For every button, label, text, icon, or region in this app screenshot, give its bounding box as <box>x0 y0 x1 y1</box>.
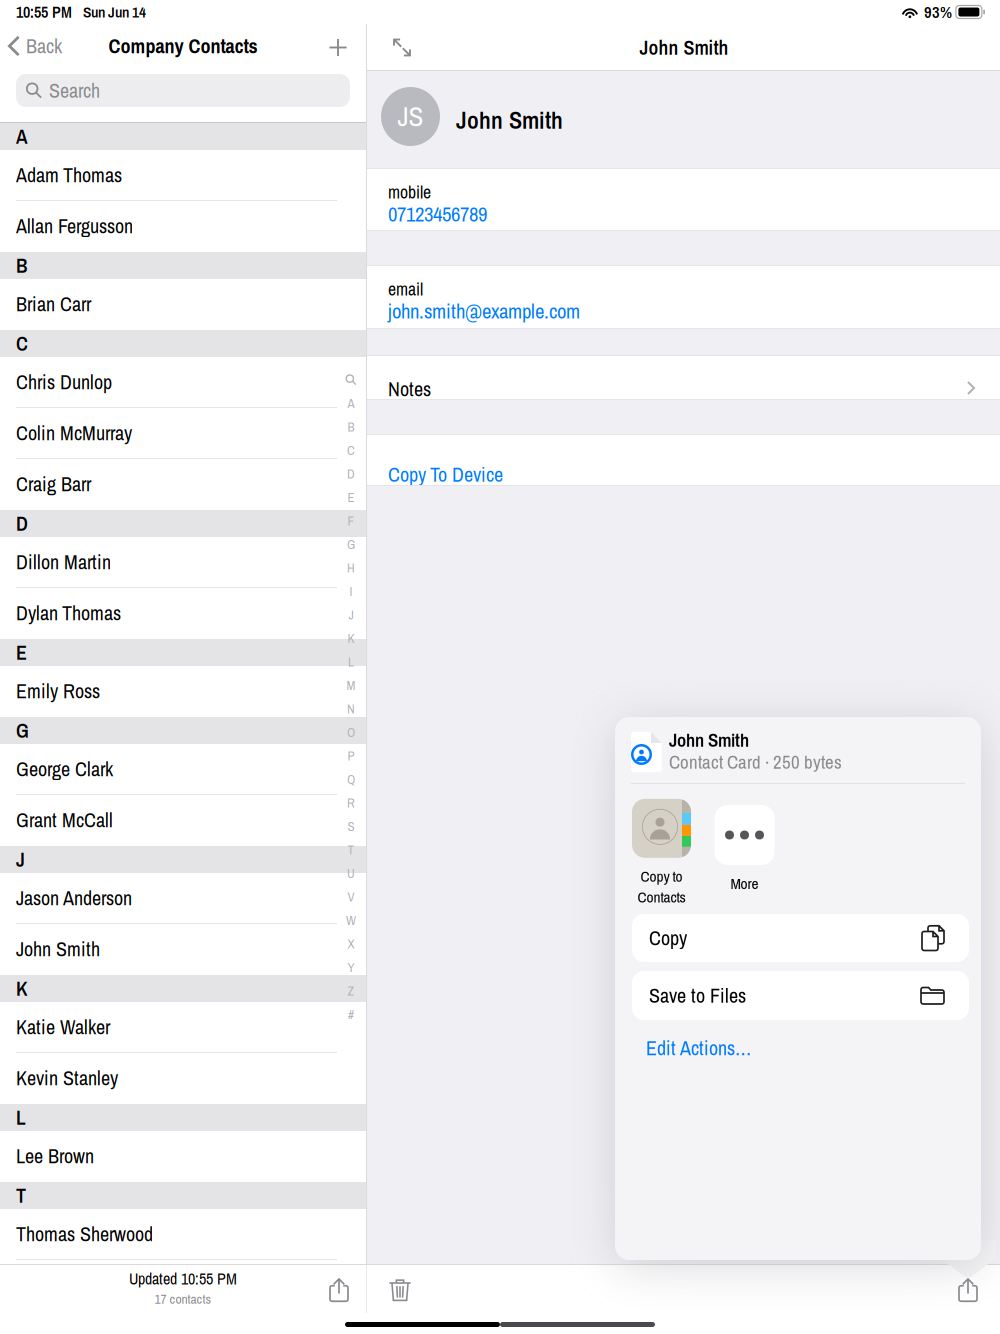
button[interactable]: More <box>702 805 787 909</box>
staticText: Edit Actions… <box>646 1034 751 1061</box>
button[interactable]: Colin McMurray <box>0 408 366 459</box>
staticText: M <box>346 676 355 694</box>
staticText: Notes <box>388 375 431 402</box>
staticText: Company Contacts <box>108 32 257 59</box>
staticText: Search <box>49 77 100 104</box>
button[interactable]: Add contact <box>316 24 360 71</box>
staticText: Allan Fergusson <box>16 212 133 239</box>
staticText: B <box>347 418 354 435</box>
button[interactable]: Thomas Sherwood <box>0 1209 366 1260</box>
button[interactable]: Brian Carr <box>0 279 366 330</box>
button[interactable]: Lee Brown <box>0 1131 366 1182</box>
button[interactable]: Adam Thomas <box>0 150 366 201</box>
staticText: JS <box>397 98 423 135</box>
staticText: Kevin Stanley <box>16 1064 118 1091</box>
staticText: P <box>347 747 354 764</box>
staticText: E <box>347 488 354 506</box>
staticText: B <box>16 252 28 279</box>
staticText: C <box>347 441 355 459</box>
staticText: C <box>16 330 28 357</box>
staticText: F <box>347 512 354 529</box>
staticText: Contacts <box>637 886 685 907</box>
button[interactable]: Back <box>8 24 120 68</box>
staticText: D <box>16 510 28 537</box>
staticText: L <box>348 653 354 670</box>
staticText: Craig Barr <box>16 470 91 497</box>
button[interactable]: Edit Actions… <box>632 1031 832 1065</box>
staticText: A <box>16 123 28 150</box>
staticText: Z <box>347 982 354 999</box>
staticText: D <box>347 465 355 482</box>
button[interactable]: Katie Walker <box>0 1002 366 1053</box>
staticText: Sun Jun 14 <box>83 2 146 22</box>
button[interactable]: Allan Fergusson <box>0 201 366 252</box>
button[interactable]: Jason Anderson <box>0 873 366 924</box>
staticText: Updated 10:55 PM <box>129 1268 237 1290</box>
staticText: Chris Dunlop <box>16 368 112 395</box>
button[interactable]: Copy to <box>619 805 704 909</box>
button[interactable]: Dylan Thomas <box>0 588 366 639</box>
staticText: K <box>347 629 354 647</box>
staticText: Copy <box>649 924 687 951</box>
staticText: email <box>388 277 423 301</box>
staticText: V <box>347 888 354 905</box>
staticText: Y <box>347 958 354 976</box>
button[interactable]: Grant McCall <box>0 795 366 846</box>
button[interactable]: Save to Files <box>632 971 969 1020</box>
staticText: T <box>16 1182 26 1209</box>
button[interactable]: Share contact <box>951 1276 985 1304</box>
staticText: mobile <box>388 180 431 204</box>
staticText: W <box>346 911 356 929</box>
button[interactable]: John Smith <box>0 924 366 975</box>
staticText: Brian Carr <box>16 290 91 317</box>
button[interactable]: Dillon Martin <box>0 537 366 588</box>
staticText: K <box>16 975 28 1002</box>
button[interactable]: Emily Ross <box>0 666 366 717</box>
staticText: Dylan Thomas <box>16 599 121 626</box>
staticText: john.smith@example.com <box>388 297 580 325</box>
staticText: John Smith <box>456 104 563 136</box>
staticText: J <box>16 846 25 873</box>
staticText: H <box>347 559 355 576</box>
button[interactable]: Notes <box>367 356 1000 400</box>
staticText: G <box>16 717 29 744</box>
button[interactable]: Expand <box>387 24 417 71</box>
button[interactable]: mobile <box>367 169 1000 231</box>
staticText: I <box>349 582 352 600</box>
button[interactable]: George Clark <box>0 744 366 795</box>
button[interactable]: Craig Barr <box>0 459 366 510</box>
staticText: G <box>347 535 355 553</box>
staticText: X <box>347 935 354 952</box>
staticText: More <box>730 873 758 894</box>
button[interactable]: email <box>367 266 1000 328</box>
staticText: T <box>347 841 354 858</box>
button[interactable]: Share contacts <box>322 1276 356 1304</box>
button[interactable]: Copy <box>632 914 969 962</box>
button[interactable]: Search <box>16 74 350 107</box>
staticText: O <box>347 723 355 741</box>
button[interactable]: Section index <box>340 368 362 1026</box>
staticText: A <box>347 394 354 412</box>
button[interactable]: Kevin Stanley <box>0 1053 366 1104</box>
staticText: E <box>16 639 27 666</box>
button[interactable]: Copy To Device <box>367 435 1000 486</box>
staticText: Save to Files <box>649 982 746 1009</box>
staticText: U <box>347 864 355 882</box>
staticText: L <box>16 1104 26 1131</box>
button[interactable]: Chris Dunlop <box>0 357 366 408</box>
staticText: Lee Brown <box>16 1142 94 1169</box>
staticText: John Smith <box>669 727 749 753</box>
staticText: John Smith <box>639 34 728 61</box>
staticText: John Smith <box>16 935 100 962</box>
button[interactable]: Delete contact <box>383 1276 417 1304</box>
staticText: 10:55 PM <box>16 1 72 23</box>
staticText: S <box>347 817 354 835</box>
staticText: Copy to <box>640 866 682 886</box>
staticText: 93% <box>924 1 952 23</box>
staticText: 07123456789 <box>388 200 487 228</box>
staticText: # <box>348 1005 354 1023</box>
staticText: George Clark <box>16 755 113 782</box>
staticText: Grant McCall <box>16 806 113 833</box>
staticText: Copy To Device <box>388 461 503 488</box>
staticText: Jason Anderson <box>16 884 132 911</box>
